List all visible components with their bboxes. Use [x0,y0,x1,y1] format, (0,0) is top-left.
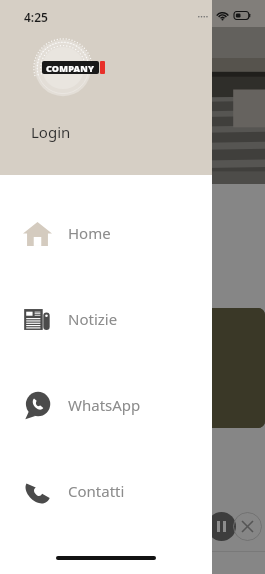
button[interactable]: Pause [207,512,236,541]
staticText: 4:25 [24,9,48,25]
staticText: Incidente sulle strisce, gamma c... [14,188,167,229]
button[interactable]: Close [233,512,262,541]
button[interactable]: WhatsApp [0,362,212,448]
button[interactable]: Notizie [0,276,212,362]
staticText: Contatti [68,481,125,501]
staticText: COMPANY [46,62,95,74]
button[interactable]: Home [0,190,212,276]
staticText: Home [68,223,111,243]
staticText: Il gip: «pericolo» che lo si è per l'imp… [14,488,111,514]
staticText: Notizie [68,309,118,329]
staticText: WhatsApp [68,395,141,415]
button[interactable]: Contatti [0,448,212,534]
button[interactable]: Login [18,114,84,150]
staticText: L'uomo di 43 anni è stato travolto nel c… [14,240,160,266]
